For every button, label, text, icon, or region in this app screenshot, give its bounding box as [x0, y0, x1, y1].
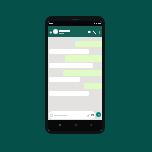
button[interactable]: More options	[97, 29, 101, 35]
button[interactable]: Home	[72, 121, 79, 128]
button[interactable]: Back	[87, 121, 94, 128]
button[interactable]	[59, 30, 87, 34]
button[interactable]: Recents	[56, 121, 63, 128]
button[interactable]: Send	[96, 112, 101, 117]
button[interactable]: Contact avatar	[53, 29, 58, 34]
button[interactable]: Call	[92, 29, 97, 35]
button[interactable]: Back	[49, 29, 52, 35]
button[interactable]	[50, 111, 94, 119]
button[interactable]: Video call	[87, 29, 92, 35]
